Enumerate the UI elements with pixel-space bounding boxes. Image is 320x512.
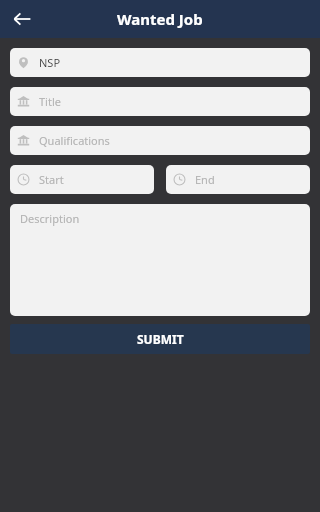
button[interactable]: End — [166, 165, 310, 194]
button[interactable]: Description — [10, 204, 310, 316]
button[interactable]: Title — [10, 87, 310, 116]
staticText: Title — [39, 94, 61, 109]
staticText: Wanted Job — [117, 9, 203, 29]
staticText: End — [195, 172, 215, 187]
staticText: Start — [39, 172, 64, 187]
staticText: NSP — [39, 55, 61, 70]
button[interactable]: NSP — [10, 48, 310, 77]
button[interactable]: Qualifications — [10, 126, 310, 155]
staticText: Description — [20, 211, 80, 226]
button[interactable]: SUBMIT — [10, 324, 310, 354]
button[interactable]: Start — [10, 165, 154, 194]
staticText: SUBMIT — [137, 331, 184, 347]
button[interactable]: Back — [6, 3, 38, 35]
staticText: Qualifications — [39, 133, 110, 148]
